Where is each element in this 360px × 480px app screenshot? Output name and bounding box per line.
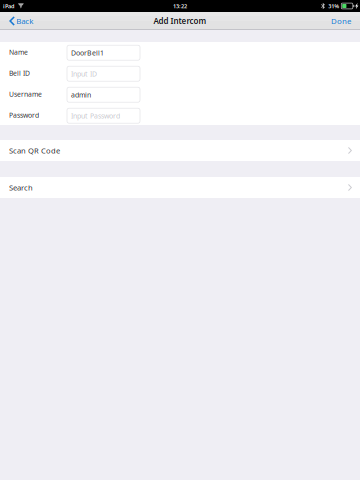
staticText: iPad (3, 2, 15, 10)
button[interactable]: Search (0, 177, 360, 198)
staticText: 13:22 (173, 2, 187, 10)
staticText: Search (9, 182, 33, 193)
staticText: Input ID (71, 69, 97, 78)
button[interactable]: Scan QR Code (0, 140, 360, 161)
staticText: Username (9, 89, 42, 99)
staticText: Bell ID (9, 68, 30, 78)
staticText: Scan QR Code (9, 145, 60, 156)
staticText: 31% (328, 2, 339, 10)
staticText: admin (71, 90, 91, 99)
button[interactable]: Done (325, 12, 360, 30)
staticText: DoorBell1 (71, 48, 104, 57)
staticText: Add Intercom (153, 16, 206, 26)
staticText: Input Password (71, 111, 120, 120)
staticText: Password (9, 110, 39, 120)
staticText: Name (9, 47, 28, 57)
staticText: Done (331, 16, 351, 26)
button[interactable]: Back (0, 12, 39, 30)
staticText: Back (16, 16, 33, 26)
